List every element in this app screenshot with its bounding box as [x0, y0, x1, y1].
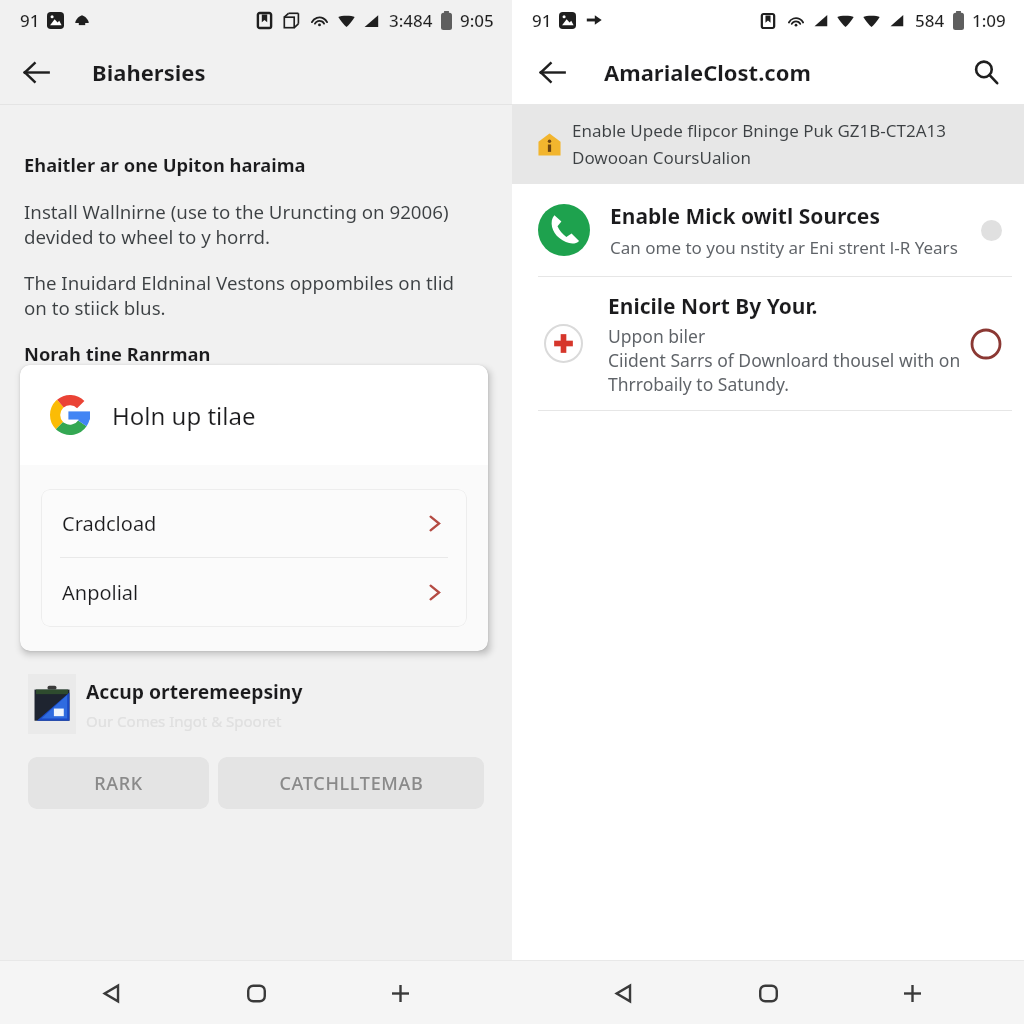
staticText: Install Wallnirne (use to the Uruncting … [24, 199, 449, 249]
button[interactable]: Back [599, 968, 649, 1018]
button[interactable]: Back [530, 50, 574, 94]
staticText: 3:484 [389, 9, 433, 32]
staticText: RARK [94, 771, 143, 796]
button[interactable]: Enicile Nort By Your. [512, 277, 1024, 410]
button[interactable]: Home [231, 968, 281, 1018]
staticText: Enicile Nort By Your. [608, 292, 818, 321]
staticText: CATCHLLTEMAB [279, 771, 424, 796]
staticText: Uppon biler Ciident Sarrs of Downloard t… [608, 324, 961, 396]
button[interactable]: Enable Upede flipcor Bninge Puk GZ1B-CT2… [512, 104, 1024, 184]
button[interactable]: CATCHLLTEMAB [218, 757, 484, 809]
staticText: Biahersies [92, 57, 206, 87]
button[interactable]: Home [743, 968, 793, 1018]
staticText: Accup orteremeepsiny [86, 678, 303, 704]
staticText: AmarialeClost.com [604, 57, 811, 87]
button[interactable]: Add [375, 968, 425, 1018]
button[interactable]: Add [887, 968, 937, 1018]
button[interactable]: RARK [28, 757, 209, 809]
button[interactable]: Back [87, 968, 137, 1018]
staticText: Can ome to you nstity ar Eni strent l-R … [610, 236, 958, 259]
button[interactable]: Search [964, 50, 1008, 94]
button[interactable]: Anpolial [41, 558, 467, 627]
staticText: Anpolial [62, 579, 139, 606]
staticText: Ehaitler ar one Upiton haraima [24, 152, 306, 177]
button[interactable]: Enable Mick owitl Sources [512, 184, 1024, 276]
staticText: The Inuidard Eldninal Vestons oppombiles… [24, 270, 454, 320]
staticText: Enable Upede flipcor Bninge Puk GZ1B-CT2… [572, 119, 947, 169]
staticText: 91 [532, 9, 552, 32]
staticText: Cradcload [62, 510, 157, 537]
button[interactable]: Cradcload [41, 489, 467, 557]
staticText: Enable Mick owitl Sources [610, 202, 880, 231]
button[interactable]: Back [14, 50, 58, 94]
staticText: Holn up tilae [112, 399, 256, 432]
staticText: 1:09 [972, 9, 1006, 32]
staticText: 91 [20, 9, 40, 32]
staticText: Norah tine Ranrman [24, 341, 211, 366]
staticText: Our Comes Ingot & Spooret [86, 711, 282, 731]
staticText: 9:05 [460, 9, 494, 32]
staticText: 584 [915, 9, 945, 32]
